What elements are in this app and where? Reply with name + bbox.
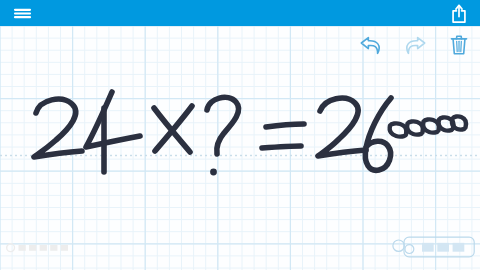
button[interactable]: Share [445,1,473,25]
button[interactable]: Redo [398,28,432,62]
button[interactable]: Menu [8,2,36,24]
button[interactable]: Undo [354,28,388,62]
button[interactable]: Delete [442,28,476,62]
